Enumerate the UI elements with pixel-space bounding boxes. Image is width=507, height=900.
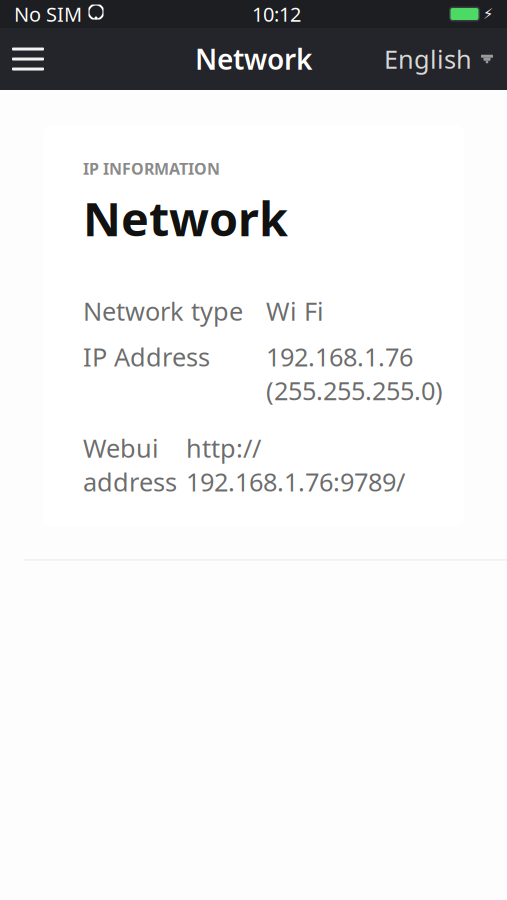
staticText: 192.168.1.76 (255.255.255.0) <box>266 340 443 407</box>
staticText: IP INFORMATION <box>83 158 220 179</box>
staticText: 10:12 <box>252 1 301 27</box>
staticText: ⚡︎ <box>483 6 493 22</box>
staticText: Network <box>83 187 288 249</box>
staticText: Webui address <box>83 431 177 498</box>
staticText: No SIM <box>14 1 82 27</box>
staticText: English <box>384 42 472 76</box>
button[interactable]: English <box>370 28 507 90</box>
staticText: Wi Fi <box>266 294 324 328</box>
staticText: http://192.168.1.76:9789/ <box>186 431 405 498</box>
staticText: IP Address <box>83 340 210 373</box>
staticText: Network type <box>83 294 243 328</box>
button[interactable]: Menu <box>0 28 56 90</box>
staticText: Network <box>195 40 312 78</box>
